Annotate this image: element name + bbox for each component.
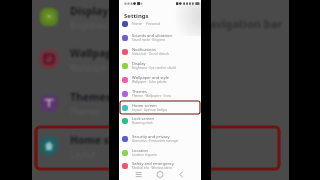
button[interactable]: Home screen xyxy=(119,101,201,114)
staticText: Themes xyxy=(132,89,147,94)
staticText: Brightness · Eye comfort shield xyxy=(132,66,176,70)
staticText: Display xyxy=(132,61,146,66)
staticText: Home screen xyxy=(132,103,157,108)
staticText: Wallpaper · Color palette xyxy=(132,80,167,84)
staticText: Wallpaper xyxy=(70,46,124,60)
button[interactable]: Home · Personal xyxy=(119,17,201,30)
staticText: Brightness xyxy=(70,20,111,31)
staticText: Security and privacy xyxy=(132,134,170,139)
button[interactable]: Wallpaper and style xyxy=(119,73,201,86)
button[interactable]: Notifications xyxy=(119,45,201,58)
staticText: Roaming clock xyxy=(132,121,153,125)
button[interactable]: Wallpaper xyxy=(32,45,144,73)
staticText: Settings xyxy=(124,12,149,20)
staticText: navigation bar xyxy=(202,16,283,31)
staticText: Display xyxy=(70,4,109,18)
button[interactable]: Lock screen xyxy=(119,114,201,127)
staticText: Sounds and vibration xyxy=(132,33,172,38)
button[interactable]: Location xyxy=(119,146,201,159)
button[interactable]: Themes xyxy=(32,89,144,117)
button[interactable]: Home s xyxy=(32,132,144,160)
button[interactable]: Safety and emergency xyxy=(119,159,201,172)
staticText: Safety and emergency xyxy=(132,161,174,166)
button[interactable]: Sounds and vibration xyxy=(119,31,201,44)
staticText: Home s xyxy=(70,133,110,147)
staticText: Wallpaper and style xyxy=(132,75,169,80)
button[interactable]: Display xyxy=(32,3,144,31)
button[interactable]: Themes xyxy=(119,87,201,100)
staticText: Notifications xyxy=(132,47,156,52)
staticText: Home · Personal xyxy=(132,21,160,26)
staticText: Location requests xyxy=(132,153,158,157)
button[interactable]: Security and privacy xyxy=(119,132,201,145)
button[interactable]: Display xyxy=(119,59,201,72)
staticText: Status bar · Do not disturb xyxy=(132,52,170,56)
staticText: Biometrics · Permission manager xyxy=(132,139,179,143)
staticText: Themes · Wallpapers · Icons xyxy=(132,94,172,98)
staticText: Themes xyxy=(70,90,111,104)
staticText: Layout · App icon badges xyxy=(132,108,168,112)
staticText: Sound mode · Ringtone xyxy=(132,38,166,42)
staticText: Lock screen xyxy=(132,116,155,121)
staticText: Location xyxy=(132,148,149,153)
staticText: Medical info · Wireless alerts xyxy=(132,166,173,170)
